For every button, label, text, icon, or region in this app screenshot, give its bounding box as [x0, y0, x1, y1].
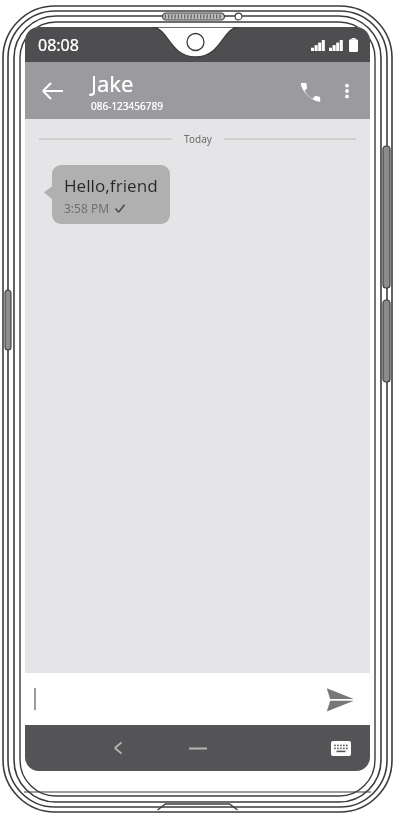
button[interactable]: Back	[33, 71, 73, 111]
button[interactable]: Send	[25, 673, 370, 725]
staticText: Jake	[91, 68, 134, 98]
button[interactable]: Keyboard	[326, 733, 356, 763]
button[interactable]: Back	[101, 731, 135, 765]
button[interactable]: Send	[320, 679, 360, 719]
button[interactable]: More options	[330, 74, 364, 108]
button[interactable]: Home	[177, 731, 219, 765]
staticText: 086-123456789	[91, 99, 163, 113]
staticText: Today	[184, 132, 212, 146]
button[interactable]: Call	[290, 71, 330, 111]
staticText: Hello,friend	[64, 174, 158, 197]
button[interactable]: Jake	[91, 68, 163, 113]
staticText: 3:58 PM	[64, 200, 110, 216]
staticText: 08:08	[38, 34, 79, 56]
button[interactable]: Hello,friend	[44, 165, 174, 224]
